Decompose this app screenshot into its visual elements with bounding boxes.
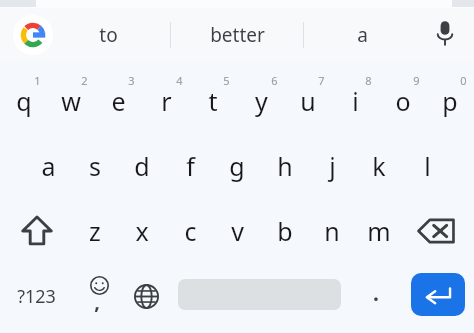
staticText: 7 <box>318 73 325 88</box>
button[interactable]: Enter <box>411 273 465 316</box>
staticText: t <box>208 84 218 118</box>
staticText: 0 <box>460 73 467 88</box>
staticText: 8 <box>365 73 372 88</box>
staticText: w <box>61 84 81 118</box>
button[interactable] <box>356 201 402 261</box>
staticText: ?123 <box>17 284 56 309</box>
staticText: . <box>373 279 379 308</box>
staticText: 6 <box>271 73 278 88</box>
button[interactable] <box>285 71 331 131</box>
staticText: j <box>329 149 336 183</box>
staticText: y <box>255 84 268 118</box>
button[interactable]: Voice input <box>424 12 466 56</box>
button[interactable] <box>190 71 236 131</box>
staticText: s <box>89 149 101 183</box>
staticText: a <box>357 22 368 48</box>
staticText: z <box>89 214 101 248</box>
staticText: better <box>210 22 265 48</box>
staticText: g <box>229 149 245 183</box>
button[interactable]: Shift <box>8 203 70 259</box>
button[interactable] <box>355 270 399 322</box>
staticText: l <box>424 149 431 183</box>
button[interactable]: Google search <box>13 15 53 55</box>
button[interactable] <box>309 201 355 261</box>
button[interactable] <box>262 136 308 196</box>
staticText: 3 <box>128 73 135 88</box>
button[interactable] <box>214 201 260 261</box>
staticText: 1 <box>34 73 41 88</box>
button[interactable] <box>143 71 189 131</box>
staticText: f <box>186 149 195 183</box>
staticText: m <box>367 214 391 248</box>
button[interactable] <box>427 71 473 131</box>
button[interactable] <box>72 136 118 196</box>
button[interactable] <box>404 136 450 196</box>
staticText: p <box>442 84 458 118</box>
staticText: i <box>352 84 359 118</box>
staticText: r <box>161 84 172 118</box>
staticText: 4 <box>176 73 183 88</box>
staticText: to <box>99 22 118 48</box>
button[interactable] <box>1 71 47 131</box>
button[interactable] <box>332 71 378 131</box>
staticText: k <box>372 149 386 183</box>
staticText: e <box>111 84 126 118</box>
button[interactable]: Emoji <box>78 270 122 322</box>
staticText: u <box>300 84 316 118</box>
staticText: 2 <box>81 73 88 88</box>
button[interactable] <box>172 8 302 62</box>
button[interactable] <box>380 71 426 131</box>
staticText: b <box>277 214 293 248</box>
staticText: n <box>324 214 340 248</box>
button[interactable] <box>72 201 118 261</box>
button[interactable] <box>167 201 213 261</box>
staticText: a <box>41 149 56 183</box>
staticText: , <box>94 288 100 314</box>
button[interactable] <box>119 201 165 261</box>
staticText: 5 <box>223 73 230 88</box>
button[interactable] <box>119 136 165 196</box>
staticText: c <box>184 214 197 248</box>
staticText: d <box>134 149 150 183</box>
button[interactable] <box>25 136 71 196</box>
button[interactable] <box>5 270 69 322</box>
button[interactable] <box>238 71 284 131</box>
button[interactable] <box>305 8 410 62</box>
staticText: x <box>135 214 149 248</box>
button[interactable]: Change language <box>124 270 170 322</box>
button[interactable] <box>167 136 213 196</box>
button[interactable] <box>95 71 141 131</box>
staticText: 9 <box>413 73 420 88</box>
staticText: o <box>395 84 411 118</box>
button[interactable] <box>309 136 355 196</box>
staticText: v <box>231 214 244 248</box>
button[interactable] <box>48 71 94 131</box>
button[interactable]: Backspace <box>404 203 466 259</box>
staticText: h <box>277 149 293 183</box>
button[interactable] <box>68 8 170 62</box>
button[interactable] <box>214 136 260 196</box>
button[interactable] <box>356 136 402 196</box>
staticText: q <box>16 84 32 118</box>
button[interactable] <box>262 201 308 261</box>
